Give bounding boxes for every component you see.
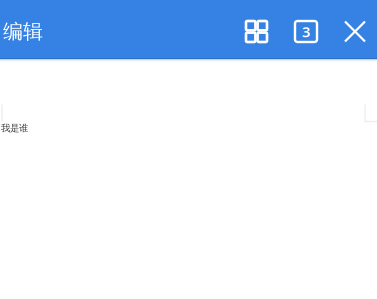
staticText: 我是谁 bbox=[1, 122, 28, 134]
button[interactable]: Grid view bbox=[232, 10, 281, 53]
button[interactable]: Close bbox=[331, 10, 377, 52]
staticText: 3 bbox=[302, 22, 310, 41]
button[interactable]: Open tabs: 3 bbox=[281, 10, 331, 53]
button[interactable]: 我是谁 bbox=[0, 62, 377, 299]
staticText: 编辑 bbox=[3, 19, 43, 44]
